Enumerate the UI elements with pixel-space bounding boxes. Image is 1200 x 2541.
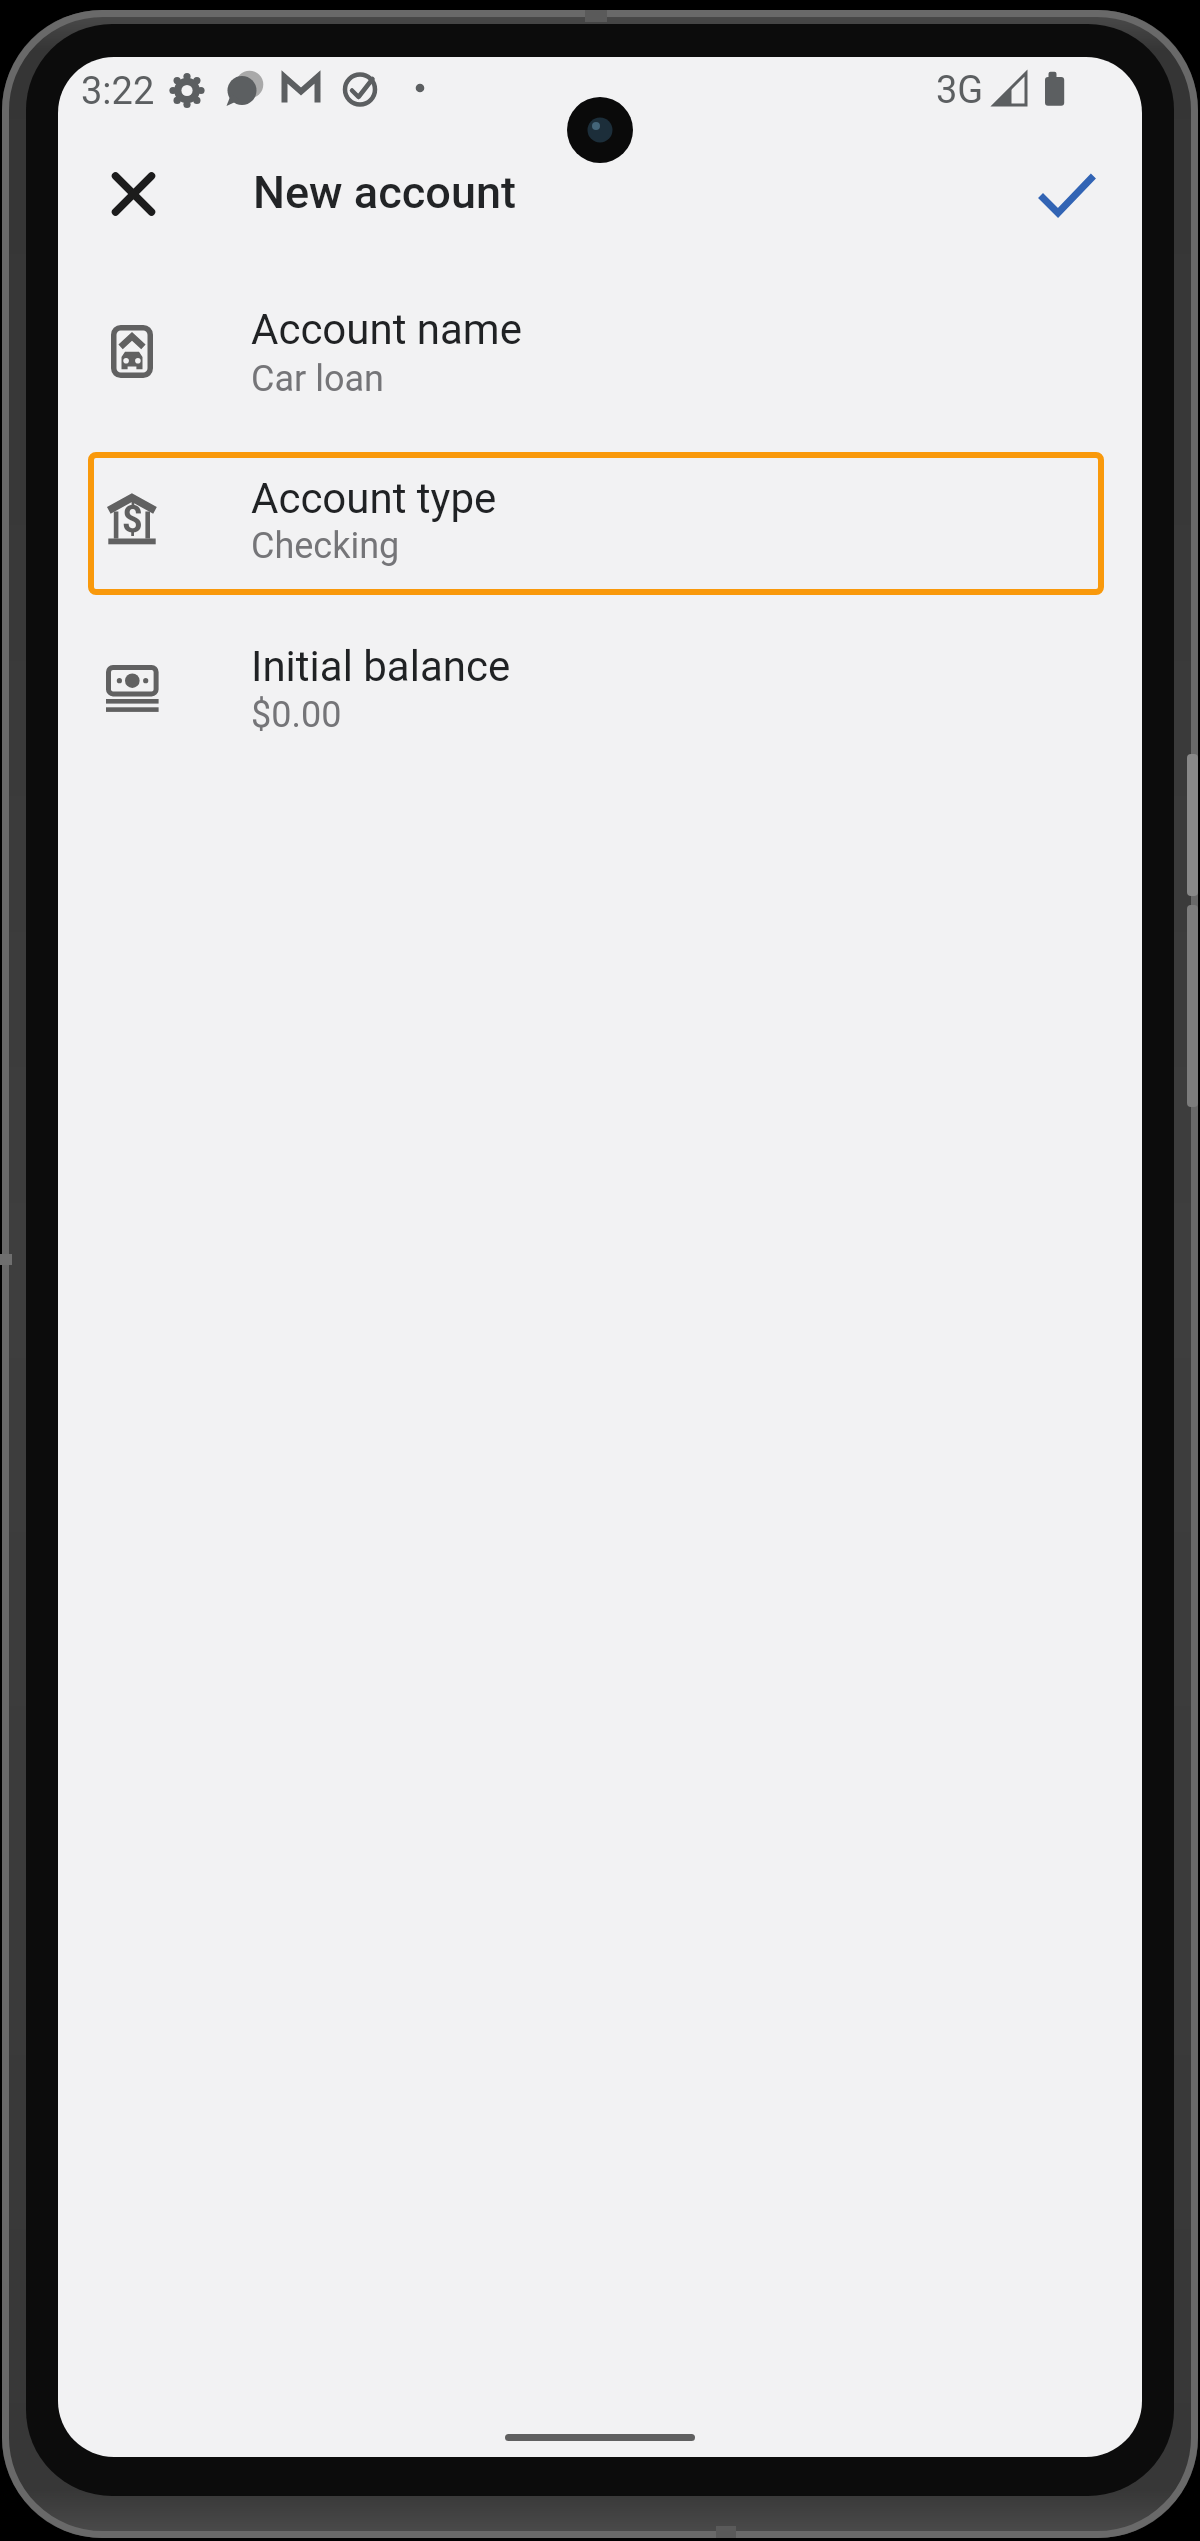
button[interactable]: Account name bbox=[58, 289, 1142, 439]
staticText: 3:22 bbox=[81, 69, 155, 114]
button[interactable]: Initial balance bbox=[58, 625, 1142, 775]
staticText: $0.00 bbox=[251, 694, 342, 736]
button[interactable] bbox=[1031, 162, 1103, 234]
staticText: Initial balance bbox=[251, 642, 511, 691]
staticText: Car loan bbox=[251, 358, 384, 400]
staticText: New account bbox=[253, 166, 516, 219]
staticText: $ bbox=[122, 499, 143, 541]
staticText: Checking bbox=[251, 525, 400, 567]
staticText: 3G bbox=[936, 68, 984, 113]
button[interactable] bbox=[98, 158, 170, 230]
button[interactable]: $ bbox=[88, 452, 1104, 595]
staticText: Account type bbox=[251, 474, 497, 523]
staticText: Account name bbox=[251, 305, 522, 354]
